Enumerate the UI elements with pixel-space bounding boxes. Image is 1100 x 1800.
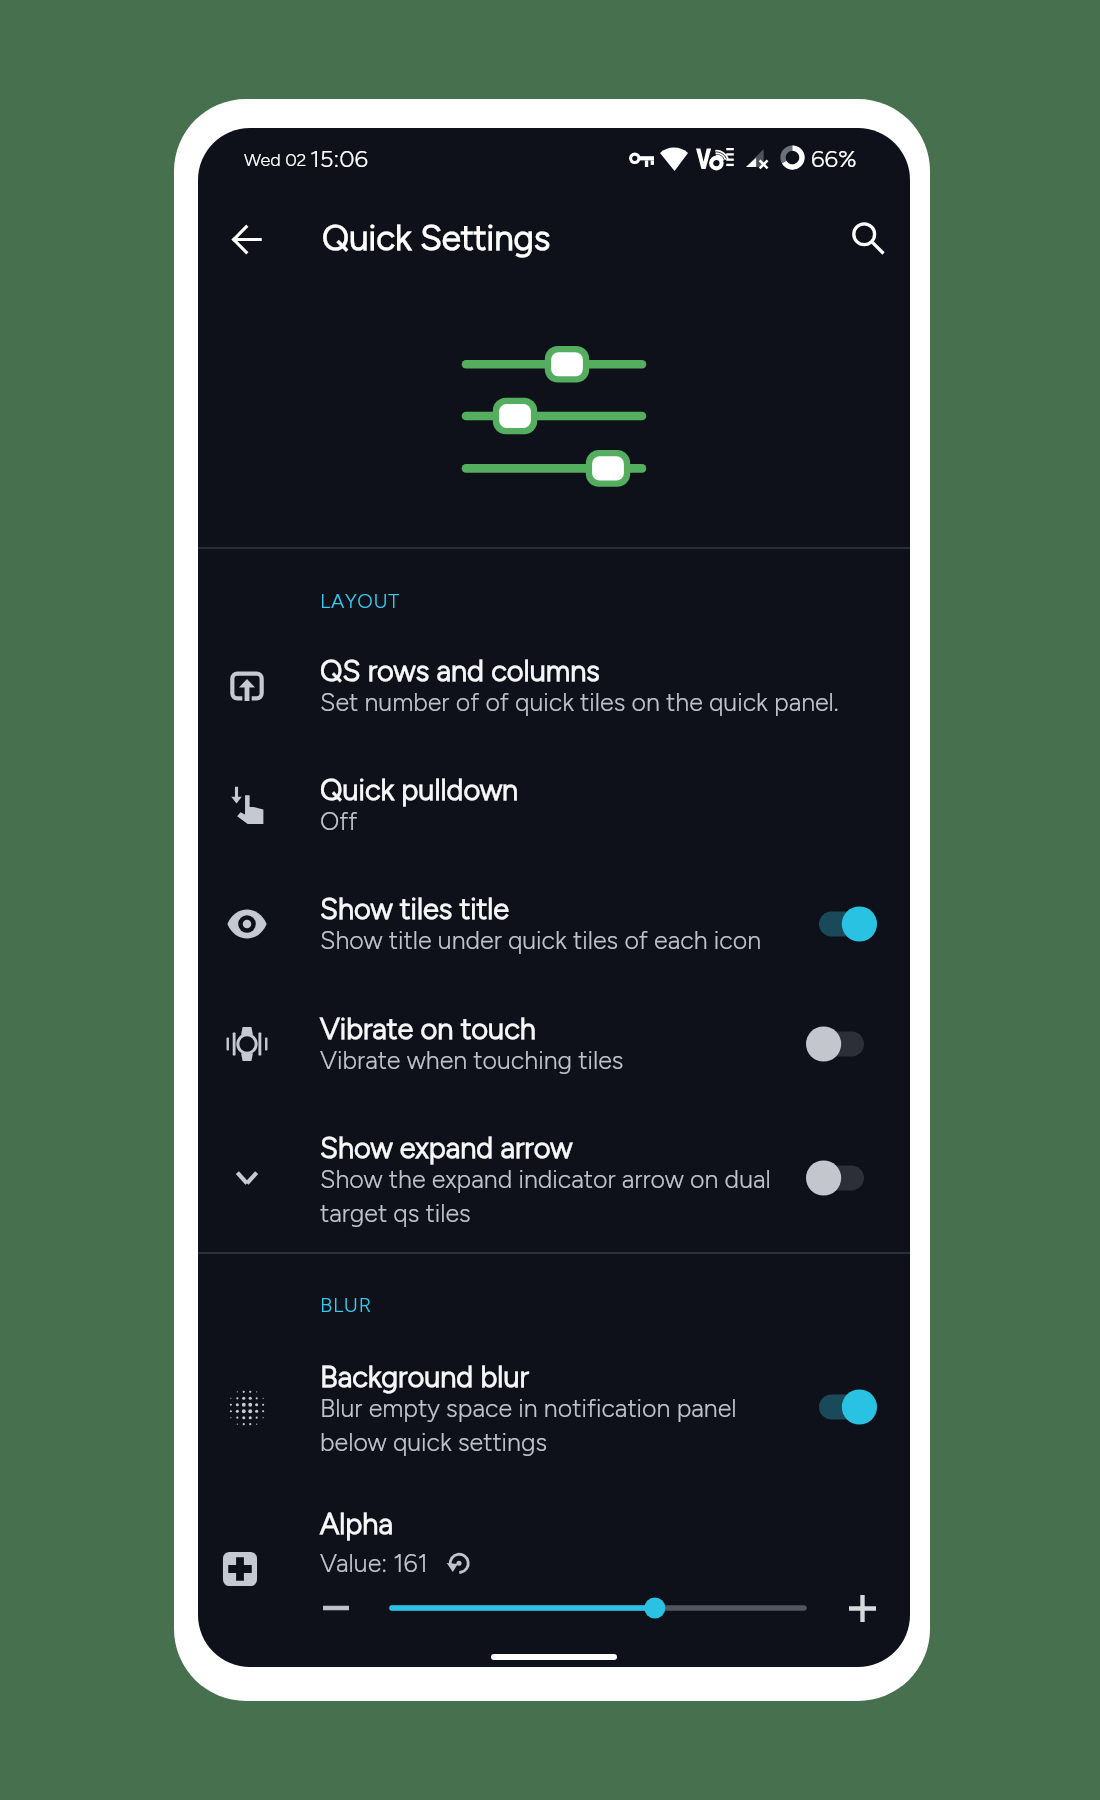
staticText: Background blur: [320, 1359, 529, 1394]
button[interactable]: [198, 876, 910, 994]
staticText: Vibrate when touching tiles: [320, 1045, 798, 1075]
button[interactable]: [198, 638, 910, 756]
button[interactable]: On: [796, 1379, 887, 1435]
button[interactable]: Search: [843, 213, 891, 261]
staticText: Off: [320, 806, 860, 836]
button[interactable]: [198, 757, 910, 853]
button[interactable]: Off: [796, 1016, 887, 1072]
staticText: 15:06: [310, 144, 368, 173]
button[interactable]: Back: [223, 215, 271, 263]
staticText: Set number of of quick tiles on the quic…: [320, 687, 860, 717]
button[interactable]: Off: [796, 1150, 887, 1206]
staticText: Wed 02: [244, 149, 307, 171]
staticText: Quick Settings: [322, 217, 551, 259]
staticText: Value: 161: [320, 1548, 428, 1578]
staticText: Show tiles title: [320, 891, 510, 926]
button[interactable]: Alpha slider: [388, 1590, 808, 1626]
staticText: Vibrate on touch: [320, 1011, 536, 1046]
button[interactable]: [198, 1344, 910, 1462]
button[interactable]: [198, 996, 910, 1114]
button[interactable]: [198, 1506, 910, 1636]
button[interactable]: On: [796, 896, 887, 952]
staticText: Alpha: [320, 1506, 393, 1541]
button[interactable]: Decrease: [314, 1586, 358, 1630]
button[interactable]: Increase: [840, 1586, 884, 1630]
button[interactable]: [198, 1115, 910, 1233]
staticText: Show title under quick tiles of each ico…: [320, 925, 798, 955]
staticText: Show the expand indicator arrow on dual …: [320, 1164, 798, 1228]
staticText: LAYOUT: [320, 589, 400, 613]
staticText: 66%: [811, 144, 857, 173]
staticText: QS rows and columns: [320, 653, 600, 688]
staticText: BLUR: [320, 1293, 372, 1317]
button[interactable]: Reset: [437, 1542, 481, 1586]
staticText: Blur empty space in notification panel b…: [320, 1393, 798, 1457]
staticText: Quick pulldown: [320, 772, 519, 807]
staticText: Show expand arrow: [320, 1130, 573, 1165]
